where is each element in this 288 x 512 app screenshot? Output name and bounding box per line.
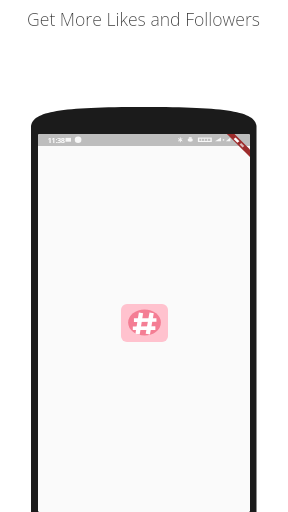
button[interactable]: Promo ribbon <box>224 134 250 159</box>
button[interactable]: App logo <box>121 304 168 342</box>
staticText: 11:38 <box>48 136 65 145</box>
staticText: Get More Likes and Followers <box>27 7 260 31</box>
